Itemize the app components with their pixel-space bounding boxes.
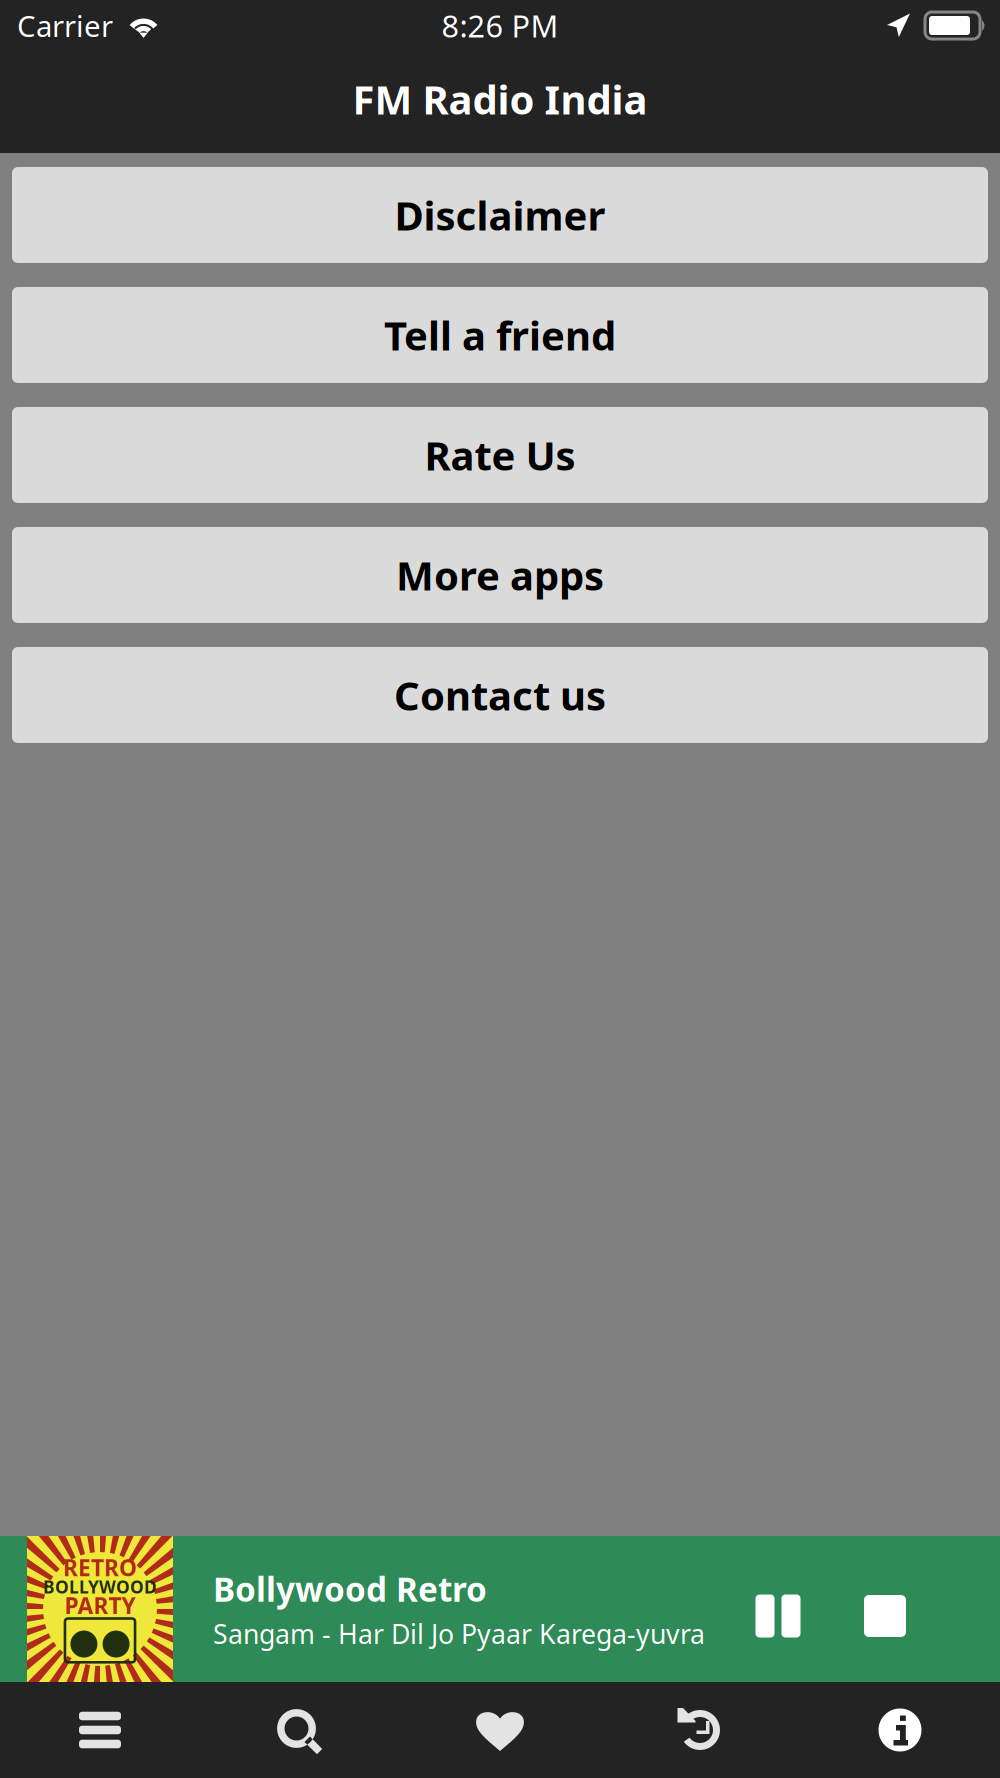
button[interactable]: Recent	[600, 1682, 800, 1778]
button[interactable]: Contact us	[12, 647, 988, 743]
staticText: Contact us	[394, 668, 606, 721]
staticText: BOLLYWOOD	[43, 1575, 157, 1598]
staticText: FM Radio India	[352, 72, 647, 125]
button[interactable]: Stations	[0, 1682, 200, 1778]
button[interactable]: Rate Us	[12, 407, 988, 503]
staticText: More apps	[396, 548, 604, 601]
staticText: RETRO	[63, 1552, 137, 1582]
staticText: 8:26 PM	[441, 5, 558, 46]
button[interactable]: Tell a friend	[12, 287, 988, 383]
staticText: Carrier	[17, 6, 113, 45]
button[interactable]: Info	[800, 1682, 1000, 1778]
button[interactable]: Disclaimer	[12, 167, 988, 263]
button[interactable]: RETRO	[0, 1536, 705, 1682]
staticText: Tell a friend	[384, 308, 616, 361]
button[interactable]: Search	[200, 1682, 400, 1778]
button[interactable]: More apps	[12, 527, 988, 623]
button[interactable]: Pause	[740, 1560, 816, 1658]
staticText: Sangam - Har Dil Jo Pyaar Karega-yuvra	[213, 1616, 705, 1651]
staticText: Rate Us	[424, 428, 575, 481]
button[interactable]: Stop	[847, 1560, 923, 1658]
button[interactable]: Favourites	[400, 1682, 600, 1778]
staticText: Disclaimer	[394, 188, 605, 241]
staticText: PARTY	[64, 1590, 135, 1620]
staticText: Bollywood Retro	[213, 1567, 487, 1611]
